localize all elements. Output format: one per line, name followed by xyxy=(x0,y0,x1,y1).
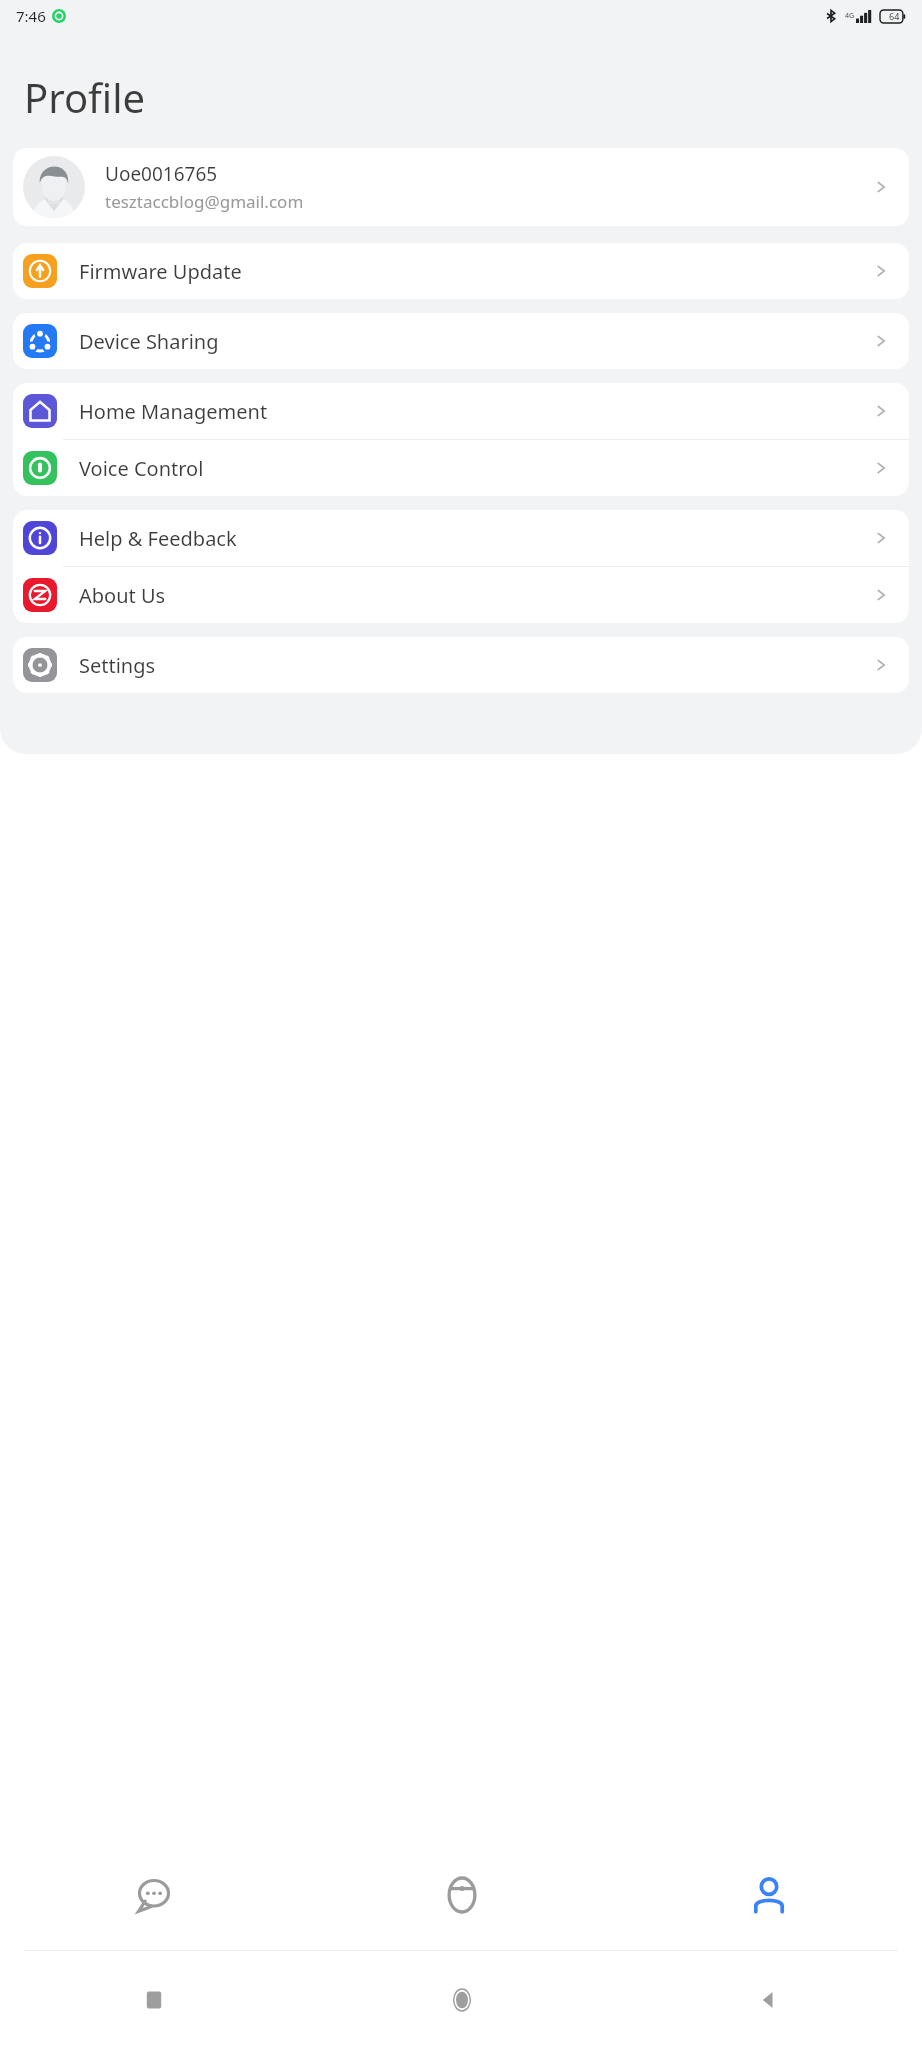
staticText: Uoe0016765 xyxy=(105,161,218,187)
button[interactable]: Home Management xyxy=(13,383,909,439)
staticText: About Us xyxy=(79,582,871,609)
button[interactable]: Voice Control xyxy=(13,440,909,496)
button[interactable]: Settings xyxy=(13,637,909,693)
button[interactable]: Help & Feedback xyxy=(13,510,909,566)
button[interactable]: Devices xyxy=(308,1840,615,1950)
staticText: 64 xyxy=(889,10,900,22)
button[interactable]: Messages xyxy=(0,1840,308,1950)
staticText: Profile xyxy=(24,70,146,124)
staticText: Device Sharing xyxy=(79,328,871,355)
button[interactable]: Profile xyxy=(615,1840,922,1950)
button[interactable]: About Us xyxy=(13,567,909,623)
staticText: Settings xyxy=(79,652,871,679)
staticText: Firmware Update xyxy=(79,258,871,285)
staticText: Home Management xyxy=(79,398,871,425)
staticText: Help & Feedback xyxy=(79,525,871,552)
staticText: Voice Control xyxy=(79,455,871,482)
staticText: tesztaccblog@gmail.com xyxy=(105,190,304,213)
button[interactable]: Firmware Update xyxy=(13,243,909,299)
button[interactable]: Uoe0016765 xyxy=(13,148,909,226)
staticText: 4G xyxy=(845,11,855,21)
button[interactable]: Device Sharing xyxy=(13,313,909,369)
staticText: 7:46 xyxy=(16,6,46,26)
